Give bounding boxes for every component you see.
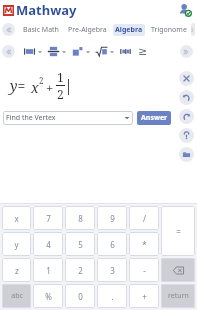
staticText: 3	[110, 265, 115, 276]
staticText: /	[143, 213, 146, 224]
button[interactable]: return	[161, 284, 195, 308]
staticText: =	[176, 226, 181, 237]
staticText: x	[14, 213, 19, 224]
staticText: 5	[78, 239, 83, 250]
button[interactable]: Backspace	[161, 258, 195, 282]
staticText: y=	[10, 76, 26, 95]
staticText: .	[111, 291, 114, 302]
button[interactable]: 7	[33, 206, 63, 230]
staticText: Trigonome	[151, 25, 187, 35]
button[interactable]: Answer	[137, 111, 171, 125]
button[interactable]: folder	[179, 147, 194, 162]
staticText: abc	[11, 291, 23, 301]
staticText: 0	[78, 291, 83, 302]
button[interactable]: 0	[65, 284, 95, 308]
button[interactable]: bracket	[23, 45, 43, 58]
staticText: 8	[78, 213, 83, 224]
staticText: 1	[57, 69, 64, 85]
button[interactable]: /	[129, 206, 159, 230]
button[interactable]: Pre-Algebra	[66, 24, 109, 36]
button[interactable]: y=	[0, 63, 197, 108]
staticText: ≥	[138, 45, 148, 57]
staticText: Mathway	[16, 1, 77, 19]
staticText: 6	[110, 239, 115, 250]
button[interactable]: abs	[119, 45, 132, 58]
button[interactable]: +	[129, 284, 159, 308]
staticText: 9	[110, 213, 115, 224]
button[interactable]: More symbols right	[180, 45, 193, 58]
staticText: %	[45, 291, 52, 302]
staticText: Algebra	[115, 25, 143, 35]
staticText: +	[142, 291, 147, 302]
staticText: 4	[46, 239, 51, 250]
button[interactable]: z	[2, 258, 31, 282]
staticText: return	[168, 291, 189, 301]
staticText: 7	[46, 213, 51, 224]
button[interactable]: close	[179, 71, 194, 86]
button[interactable]: root	[95, 45, 115, 58]
staticText: -	[143, 265, 146, 276]
button[interactable]: 4	[33, 232, 63, 256]
button[interactable]: More symbols left	[2, 45, 15, 58]
staticText: Answer	[141, 113, 168, 123]
button[interactable]: 2	[65, 258, 95, 282]
button[interactable]: Trigonome	[149, 24, 189, 36]
button[interactable]: fraction	[47, 45, 67, 58]
button[interactable]: %	[33, 284, 63, 308]
button[interactable]: x	[2, 206, 31, 230]
button[interactable]: 3	[97, 258, 127, 282]
button[interactable]: redo	[179, 109, 194, 124]
staticText: *	[142, 239, 147, 250]
button[interactable]: 8	[65, 206, 95, 230]
button[interactable]: .	[97, 284, 127, 308]
button[interactable]: -	[129, 258, 159, 282]
button[interactable]: Greater or equal	[137, 45, 149, 57]
staticText: 1	[46, 265, 51, 276]
button[interactable]: *	[129, 232, 159, 256]
button[interactable]: abc	[2, 284, 31, 308]
staticText: +	[46, 79, 54, 97]
button[interactable]: Basic Math	[21, 24, 61, 36]
staticText: z	[15, 265, 19, 276]
button[interactable]: Next categories	[191, 23, 195, 36]
staticText: Find the Vertex	[6, 113, 56, 123]
button[interactable]: Previous categories	[2, 23, 15, 36]
button[interactable]: 6	[97, 232, 127, 256]
staticText: y	[14, 239, 19, 250]
button[interactable]: 9	[97, 206, 127, 230]
button[interactable]: Account	[177, 2, 193, 18]
button[interactable]: =	[161, 206, 195, 256]
staticText: Basic Math	[23, 25, 59, 35]
button[interactable]: y	[2, 232, 31, 256]
button[interactable]: undo	[179, 90, 194, 105]
button[interactable]: Algebra	[113, 24, 145, 36]
staticText: x	[31, 78, 39, 97]
button[interactable]: 1	[33, 258, 63, 282]
staticText: 2	[57, 86, 64, 102]
staticText: 2	[78, 265, 83, 276]
staticText: 2	[39, 75, 44, 86]
button[interactable]: 5	[65, 232, 95, 256]
button[interactable]: help	[179, 128, 194, 143]
button[interactable]: power	[71, 45, 91, 58]
staticText: Pre-Algebra	[68, 25, 107, 35]
button[interactable]: Find the Vertex	[3, 111, 133, 125]
